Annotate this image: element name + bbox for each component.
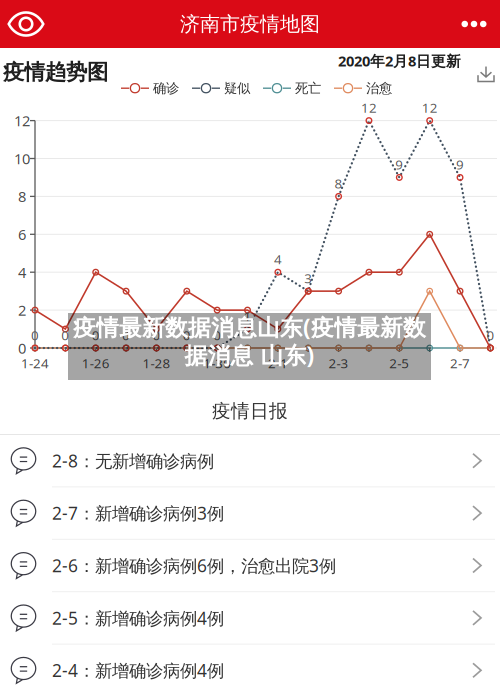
staticText: 2 [18, 300, 26, 320]
staticText: 1-30 [203, 354, 231, 372]
staticText: 2-4：新增确诊病例4例 [52, 659, 224, 682]
staticText: 1 [243, 307, 251, 325]
staticText: 0 [61, 326, 69, 344]
staticText: 2-1 [268, 354, 288, 372]
button[interactable]: 2-6：新增确诊病例6例，治愈出院3例 [0, 540, 500, 591]
button[interactable]: 2-4：新增确诊病例4例 [0, 645, 500, 693]
staticText: 2-3 [329, 354, 349, 372]
staticText: 0 [183, 326, 191, 344]
staticText: 0 [18, 338, 26, 358]
staticText: 0 [152, 326, 160, 344]
staticText: 2-8：无新增确诊病例 [52, 449, 214, 472]
staticText: 2-6：新增确诊病例6例，治愈出院3例 [52, 554, 336, 577]
button[interactable]: 2-7：新增确诊病例3例 [0, 487, 500, 539]
staticText: 2-7 [450, 354, 470, 372]
staticText: 0 [486, 326, 494, 344]
staticText: 8 [335, 174, 343, 192]
staticText: 4 [274, 250, 282, 268]
staticText: 0 [122, 326, 130, 344]
button[interactable]: Home [0, 0, 52, 48]
staticText: 9 [456, 156, 464, 173]
staticText: 12 [361, 99, 377, 116]
staticText: 治愈 [366, 80, 392, 96]
staticText: 0 [213, 326, 221, 344]
staticText: 6 [18, 225, 26, 244]
staticText: 疫情最新数据消息山东(疫情最新数 [73, 312, 426, 342]
staticText: 确诊 [153, 80, 179, 96]
staticText: 1-26 [82, 354, 110, 372]
staticText: 12 [422, 99, 438, 116]
button[interactable]: More [448, 0, 500, 48]
staticText: 0 [31, 326, 39, 344]
staticText: 3 [304, 269, 312, 287]
staticText: 9 [395, 156, 403, 173]
staticText: 2020年2月8日更新 [338, 51, 461, 70]
staticText: 死亡 [295, 80, 321, 96]
staticText: 1-28 [142, 354, 170, 372]
staticText: 0 [92, 326, 100, 344]
staticText: 济南市疫情地图 [180, 12, 320, 36]
staticText: 疫情趋势图 [3, 59, 108, 85]
staticText: 2-7：新增确诊病例3例 [52, 502, 224, 525]
staticText: 疑似 [224, 80, 250, 96]
staticText: 2-5 [389, 354, 409, 372]
staticText: 4 [18, 262, 26, 282]
staticText: 据消息 山东) [184, 340, 314, 370]
staticText: 8 [18, 187, 26, 206]
staticText: 1-24 [21, 354, 49, 372]
button[interactable]: 2-5：新增确诊病例4例 [0, 592, 500, 644]
button[interactable]: Download [474, 62, 498, 86]
staticText: 疫情日报 [212, 399, 288, 422]
staticText: 2-5：新增确诊病例4例 [52, 606, 224, 629]
button[interactable]: 2-8：无新增确诊病例 [0, 435, 500, 486]
staticText: 12 [14, 111, 30, 130]
staticText: 10 [14, 149, 30, 168]
